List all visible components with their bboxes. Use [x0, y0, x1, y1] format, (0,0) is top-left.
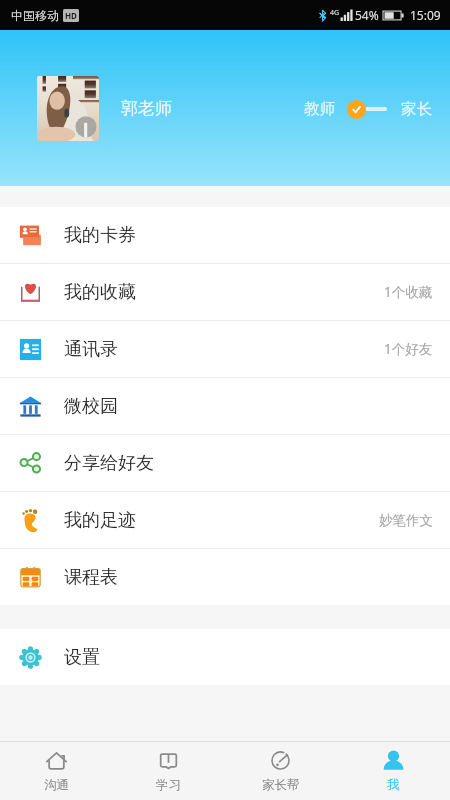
staticText: 我的足迹 — [64, 509, 136, 532]
staticText: 分享给好友 — [64, 452, 154, 475]
button[interactable] — [347, 99, 387, 119]
button[interactable]: 设置 — [0, 629, 450, 685]
button[interactable]: 我的足迹 — [0, 492, 450, 548]
button[interactable]: 我的卡券 — [0, 207, 450, 263]
button[interactable]: 沟通 — [0, 742, 112, 800]
staticText: 家长帮 — [262, 777, 300, 793]
staticText: 54% — [355, 7, 379, 23]
staticText: 1个收藏 — [384, 283, 433, 301]
staticText: 设置 — [64, 646, 100, 669]
staticText: 妙笔作文 — [379, 512, 433, 529]
button[interactable]: 微校园 — [0, 378, 450, 434]
button[interactable]: 我 — [337, 742, 450, 800]
button[interactable]: 分享给好友 — [0, 435, 450, 491]
staticText: 中国移动 — [11, 8, 59, 23]
staticText: 15:09 — [410, 7, 441, 23]
button[interactable]: 家长帮 — [224, 742, 337, 800]
staticText: 家长 — [401, 99, 432, 119]
staticText: 郭老师 — [121, 98, 172, 119]
staticText: HD — [65, 10, 77, 21]
staticText: 微校园 — [64, 395, 118, 418]
button[interactable]: 课程表 — [0, 549, 450, 605]
staticText: 我的卡券 — [64, 224, 136, 247]
staticText: 学习 — [156, 777, 181, 793]
staticText: 我的收藏 — [64, 281, 136, 304]
staticText: 教师 — [304, 99, 335, 119]
staticText: 沟通 — [44, 777, 69, 793]
button[interactable]: 我的收藏 — [0, 264, 450, 320]
staticText: 我 — [387, 777, 400, 793]
button[interactable]: 通讯录 — [0, 321, 450, 377]
staticText: 1个好友 — [384, 340, 433, 358]
staticText: 通讯录 — [64, 338, 118, 361]
staticText: 课程表 — [64, 566, 118, 589]
staticText: 4G — [330, 8, 340, 18]
button[interactable]: 学习 — [112, 742, 224, 800]
